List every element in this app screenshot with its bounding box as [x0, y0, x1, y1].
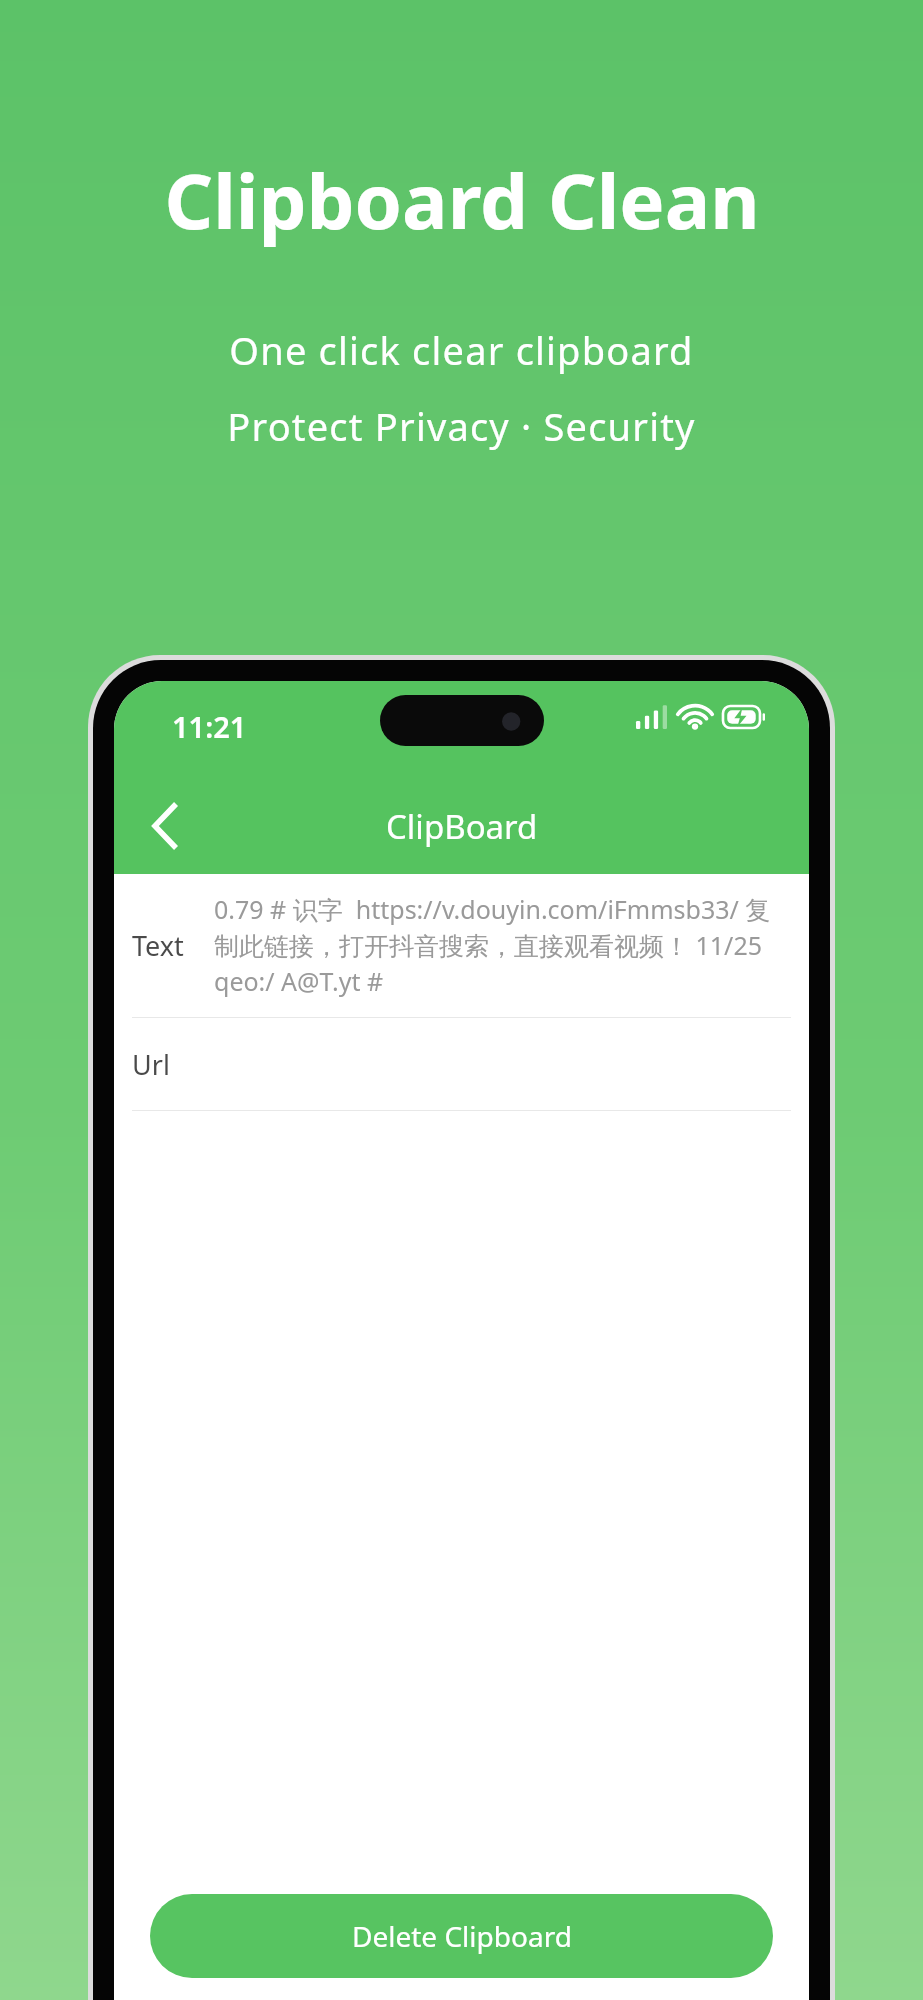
button[interactable]: Delete Clipboard: [150, 1894, 773, 1978]
staticText: 0.79 # 识字 https://v.douyin.com/iFmmsb33/…: [214, 892, 791, 999]
staticText: One click clear clipboard: [229, 324, 694, 376]
staticText: Url: [132, 1046, 170, 1083]
staticText: ClipBoard: [386, 804, 538, 849]
staticText: Clipboard Clean: [164, 148, 760, 252]
button[interactable]: Text: [114, 874, 809, 1017]
staticText: 11:21: [172, 707, 247, 746]
staticText: Text: [132, 927, 214, 964]
staticText: Delete Clipboard: [352, 1917, 572, 1955]
staticText: Protect Privacy · Security: [227, 400, 696, 452]
button[interactable]: Back: [132, 793, 198, 859]
button[interactable]: Url: [114, 1018, 809, 1110]
